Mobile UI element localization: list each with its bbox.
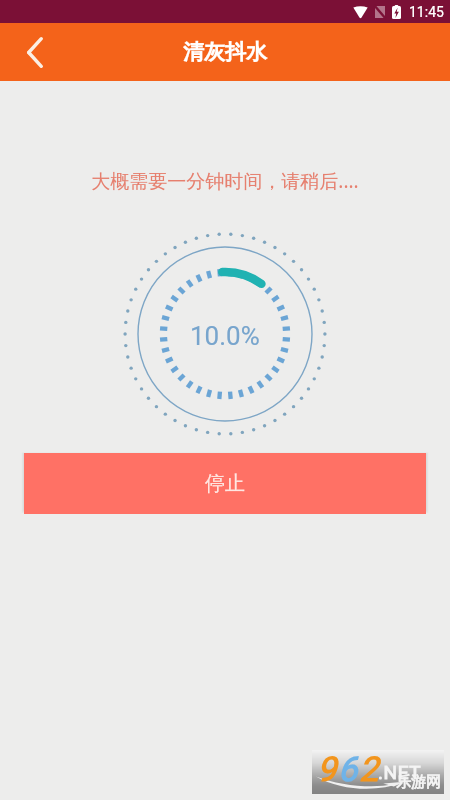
staticText: 大概需要一分钟时间，请稍后.... [0, 168, 450, 194]
button[interactable]: 停止 [24, 453, 426, 514]
staticText: 乐游网 [396, 773, 441, 792]
staticText: 11:45 [409, 4, 444, 20]
staticText: 9 [317, 749, 338, 789]
staticText: 清灰抖水 [183, 39, 267, 65]
staticText: 10.0% [190, 321, 260, 351]
staticText: 6 [338, 749, 359, 789]
staticText: 2 [359, 749, 380, 789]
staticText: .NET [378, 761, 422, 783]
staticText: 停止 [205, 471, 245, 496]
button[interactable]: Back [0, 23, 70, 81]
